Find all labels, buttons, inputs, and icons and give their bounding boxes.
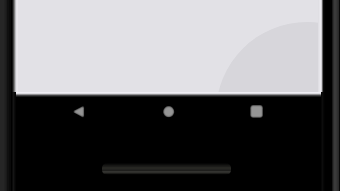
button[interactable]: Home bbox=[156, 99, 181, 124]
button[interactable]: Home gesture bar bbox=[102, 163, 231, 175]
button[interactable]: Recent apps bbox=[244, 99, 269, 124]
button[interactable]: Back bbox=[66, 99, 91, 124]
